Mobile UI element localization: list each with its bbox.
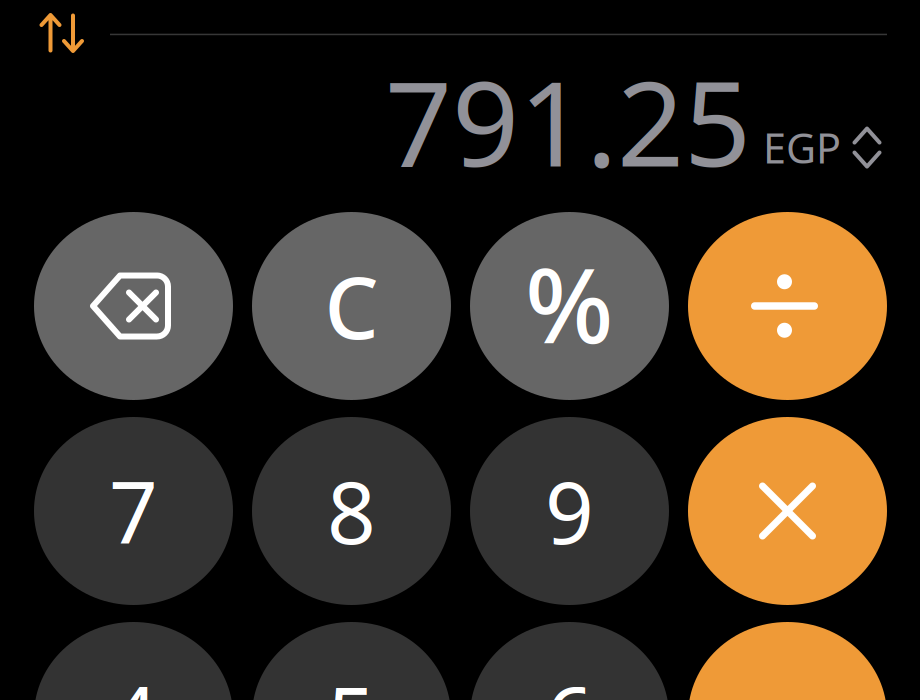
button[interactable]: %	[470, 212, 669, 400]
staticText: 4	[109, 659, 158, 700]
staticText: %	[525, 234, 614, 372]
staticText: 7	[109, 454, 158, 568]
staticText: EGP	[763, 120, 841, 175]
staticText: 9	[545, 454, 594, 568]
button[interactable]: 5	[252, 622, 451, 700]
button[interactable]: 8	[252, 417, 451, 605]
staticText: 5	[327, 659, 376, 700]
button[interactable]: C	[252, 212, 451, 400]
button[interactable]: Delete	[34, 212, 233, 400]
button[interactable]: 9	[470, 417, 669, 605]
button[interactable]: Multiply	[688, 417, 887, 605]
button[interactable]: 4	[34, 622, 233, 700]
staticText: 8	[327, 454, 376, 568]
button[interactable]: 7	[34, 417, 233, 605]
button[interactable]: EGP	[747, 120, 882, 175]
button[interactable]: 6	[470, 622, 669, 700]
button[interactable]: Swap currencies	[31, 5, 93, 61]
button[interactable]: Divide	[688, 212, 887, 400]
staticText: 6	[545, 659, 594, 700]
button[interactable]: Subtract	[688, 622, 887, 700]
staticText: 791.25	[385, 43, 751, 199]
staticText: C	[324, 249, 378, 363]
